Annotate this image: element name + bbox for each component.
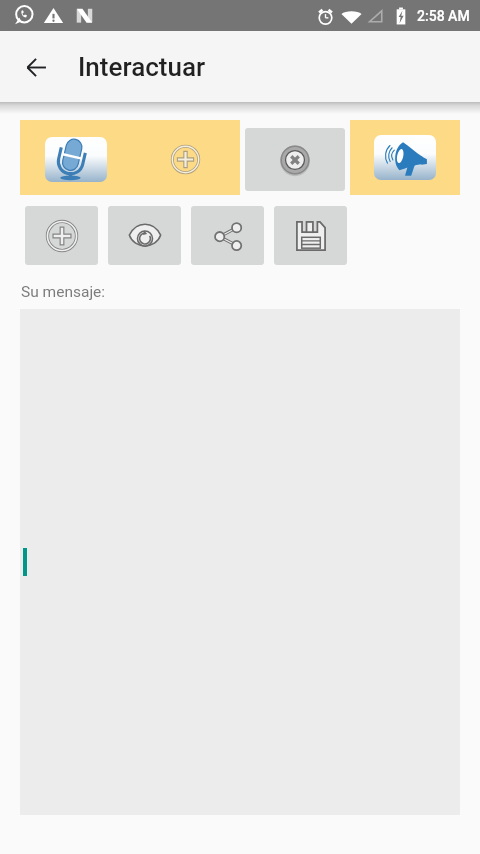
staticText: Su mensaje: — [21, 283, 106, 301]
button[interactable] — [20, 309, 460, 815]
button[interactable]: Back — [16, 47, 56, 87]
button[interactable]: Stop — [245, 128, 345, 191]
button[interactable]: Save — [274, 206, 347, 265]
staticText: Interactuar — [78, 52, 206, 82]
button[interactable]: Preview — [108, 206, 181, 265]
button[interactable]: Add — [25, 206, 98, 265]
button[interactable] — [350, 120, 460, 195]
staticText: 2:58 AM — [417, 8, 470, 24]
button[interactable]: Share — [191, 206, 264, 265]
other: Add — [171, 145, 200, 174]
button[interactable]: Add — [20, 120, 240, 195]
